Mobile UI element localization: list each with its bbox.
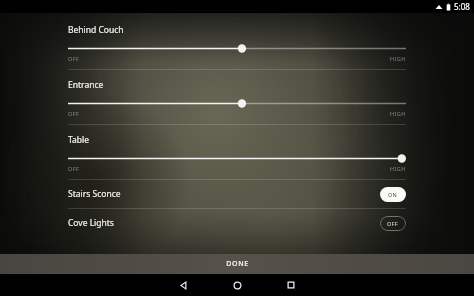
staticText: Behind Couch	[68, 24, 124, 36]
button[interactable]: Stairs Sconce	[0, 180, 474, 208]
staticText: OFF	[68, 165, 80, 172]
staticText: HIGH	[390, 55, 406, 62]
staticText: DONE	[226, 259, 249, 269]
button[interactable]: Home	[210, 274, 264, 296]
button[interactable]: Recent apps	[264, 274, 318, 296]
button[interactable]: OFF	[380, 216, 406, 231]
button[interactable]: Behind Couch	[0, 15, 474, 69]
staticText: ON	[388, 191, 398, 198]
staticText: HIGH	[390, 165, 406, 172]
staticText: HIGH	[390, 110, 406, 117]
staticText: Cove Lights	[68, 217, 114, 229]
staticText: Entrance	[68, 79, 104, 91]
button[interactable]: Entrance	[0, 70, 474, 124]
button[interactable]: ON	[380, 187, 406, 202]
staticText: Table	[68, 134, 90, 146]
button[interactable]: DONE	[0, 254, 474, 274]
button[interactable]: Table	[0, 125, 474, 179]
staticText: OFF	[68, 110, 80, 117]
staticText: 5:08	[454, 1, 470, 12]
button[interactable]: Back	[156, 274, 210, 296]
staticText: OFF	[68, 55, 80, 62]
staticText: Stairs Sconce	[68, 188, 121, 200]
staticText: OFF	[387, 220, 399, 227]
button[interactable]: Cove Lights	[0, 209, 474, 237]
